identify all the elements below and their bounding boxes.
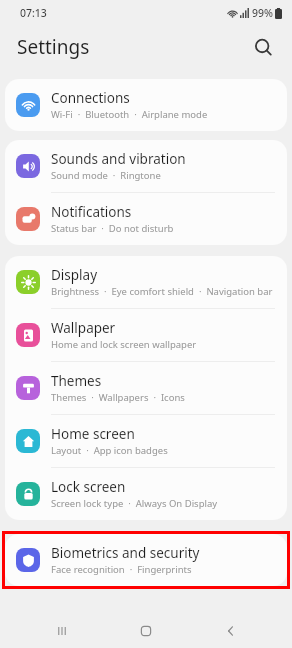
staticText: 07:13 <box>20 6 47 20</box>
staticText: Status bar · Do not disturb <box>51 222 174 235</box>
button[interactable]: Notifications <box>5 193 287 245</box>
button[interactable]: Back <box>208 614 254 648</box>
staticText: Connections <box>51 89 130 107</box>
button[interactable]: Recents <box>39 614 85 648</box>
staticText: Face recognition · Fingerprints <box>51 563 192 576</box>
staticText: Home screen <box>51 425 135 443</box>
button[interactable]: Wallpaper <box>5 309 287 361</box>
button[interactable]: Home screen <box>5 415 287 467</box>
staticText: Wallpaper <box>51 319 116 337</box>
staticText: Screen lock type · Always On Display <box>51 497 218 510</box>
staticText: Themes <box>51 372 102 390</box>
button[interactable]: Connections <box>5 79 287 131</box>
button[interactable]: Biometrics and security <box>5 534 287 586</box>
staticText: Biometrics and security <box>51 544 200 562</box>
staticText: Wi-Fi · Bluetooth · Airplane mode <box>51 108 208 121</box>
staticText: Settings <box>17 34 90 60</box>
staticText: Brightness · Eye comfort shield · Naviga… <box>51 285 273 298</box>
button[interactable]: Themes <box>5 362 287 414</box>
staticText: 99% <box>252 6 273 20</box>
staticText: Layout · App icon badges <box>51 444 168 457</box>
staticText: Home and lock screen wallpaper <box>51 338 197 351</box>
staticText: Sounds and vibration <box>51 150 186 168</box>
button[interactable]: Sounds and vibration <box>5 140 287 192</box>
staticText: Lock screen <box>51 478 126 496</box>
button[interactable]: Search <box>246 30 280 64</box>
button[interactable]: Lock screen <box>5 468 287 520</box>
button[interactable]: Home <box>123 614 169 648</box>
button[interactable]: Display <box>5 256 287 308</box>
staticText: Sound mode · Ringtone <box>51 169 161 182</box>
staticText: Notifications <box>51 203 132 221</box>
staticText: Display <box>51 266 98 284</box>
staticText: Themes · Wallpapers · Icons <box>51 391 185 404</box>
